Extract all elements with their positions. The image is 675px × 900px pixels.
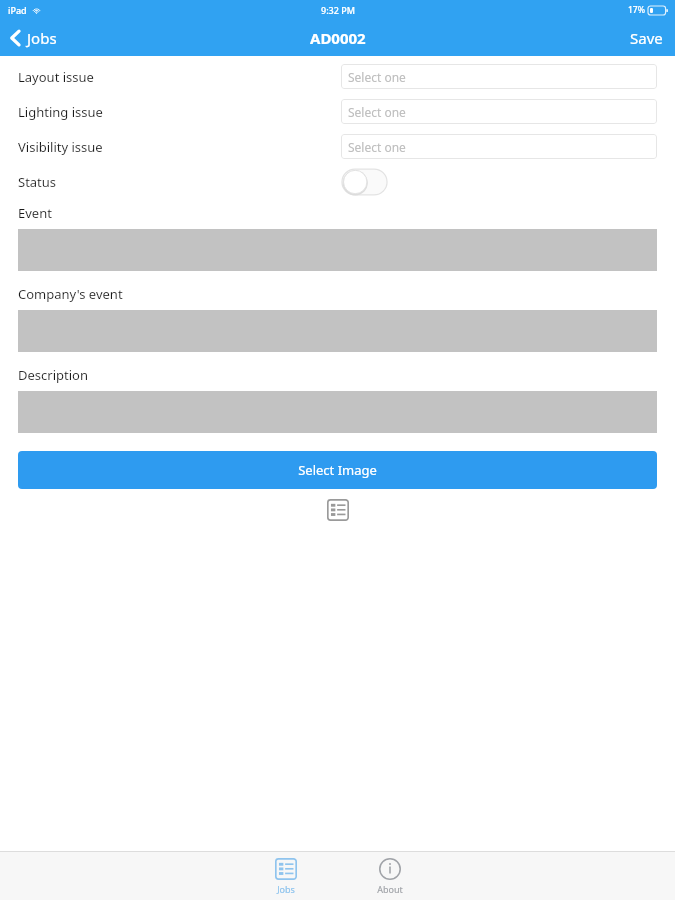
button[interactable]: Select one	[341, 64, 657, 89]
button[interactable]: Select one	[341, 99, 657, 124]
staticText: Company's event	[18, 285, 123, 303]
staticText: Select one	[348, 139, 406, 155]
staticText: Select one	[348, 69, 406, 85]
staticText: Description	[18, 366, 88, 384]
staticText: iPad	[8, 4, 27, 16]
staticText: Jobs	[27, 28, 57, 48]
staticText: Visibility issue	[18, 138, 341, 156]
staticText: Lighting issue	[18, 103, 341, 121]
staticText: Status	[18, 173, 341, 191]
button[interactable]: Select Image	[18, 451, 657, 489]
button[interactable]: Select one	[341, 134, 657, 159]
button[interactable]: Status toggle	[341, 168, 388, 196]
staticText: 9:32 PM	[321, 4, 355, 16]
staticText: AD0002	[310, 28, 366, 48]
staticText: Jobs	[277, 883, 295, 895]
staticText: Event	[18, 204, 52, 222]
staticText: Save	[630, 28, 663, 48]
button[interactable]: About	[364, 852, 416, 900]
staticText: Layout issue	[18, 68, 341, 86]
staticText: Select Image	[298, 461, 377, 479]
button[interactable]: Jobs	[260, 852, 312, 900]
button[interactable]: Save	[618, 22, 675, 54]
staticText: About	[377, 883, 403, 895]
staticText: Select one	[348, 104, 406, 120]
button[interactable]: Jobs	[0, 24, 67, 52]
staticText: 17%	[628, 4, 645, 16]
